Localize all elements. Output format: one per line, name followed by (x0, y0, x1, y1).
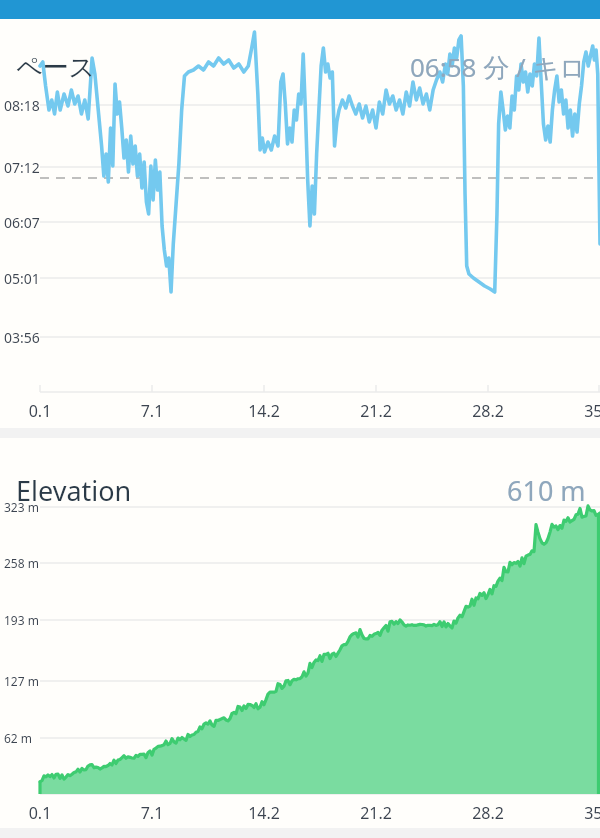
staticText: 28.2 (462, 802, 514, 824)
button[interactable]: 08:18 (0, 19, 600, 428)
staticText: ペース (16, 51, 96, 84)
staticText: 14.2 (238, 802, 290, 824)
button[interactable]: 323 m (0, 438, 600, 828)
staticText: 21.2 (350, 400, 402, 422)
staticText: 323 m (4, 499, 74, 515)
staticText: 610 m (507, 472, 586, 509)
staticText: 35.3 (574, 400, 600, 422)
staticText: 0.1 (14, 802, 66, 824)
staticText: 08:18 (4, 96, 74, 115)
staticText: 193 m (4, 612, 74, 628)
staticText: Elevation (16, 472, 132, 509)
staticText: 21.2 (350, 802, 402, 824)
staticText: 03:56 (4, 328, 74, 347)
staticText: 05:01 (4, 269, 74, 288)
staticText: 06:07 (4, 213, 74, 232)
staticText: 62 m (4, 730, 74, 746)
staticText: 258 m (4, 555, 74, 571)
staticText: 14.2 (238, 400, 290, 422)
staticText: 127 m (4, 673, 74, 689)
staticText: 28.2 (462, 400, 514, 422)
staticText: 07:12 (4, 158, 74, 177)
staticText: 0.1 (14, 400, 66, 422)
staticText: 7.1 (126, 400, 178, 422)
staticText: 35.3 (574, 802, 600, 824)
staticText: 7.1 (126, 802, 178, 824)
staticText: 06:58 分 / キロ (410, 49, 586, 85)
